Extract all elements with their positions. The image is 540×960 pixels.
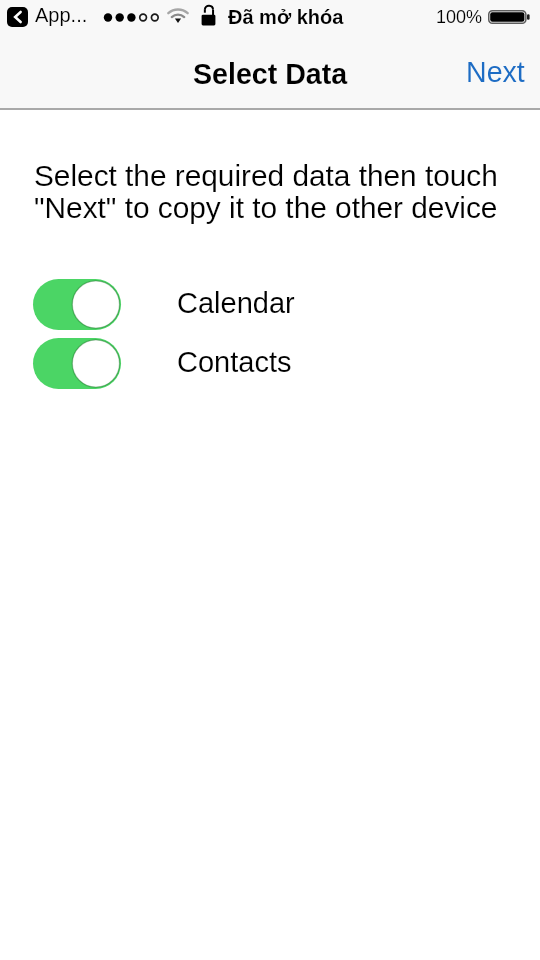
staticText: Next bbox=[466, 56, 525, 88]
staticText: Calendar bbox=[177, 287, 295, 319]
staticText: Select the required data then touch "Nex… bbox=[34, 159, 498, 224]
staticText: Select Data bbox=[193, 58, 348, 90]
staticText: App... bbox=[35, 4, 88, 26]
staticText: 100% bbox=[436, 7, 483, 27]
other: Contacts on bbox=[33, 338, 121, 389]
button[interactable]: Back to App bbox=[7, 7, 28, 27]
staticText: Contacts bbox=[177, 346, 292, 378]
button[interactable]: Calendar on bbox=[0, 279, 540, 330]
staticText: Đã mở khóa bbox=[228, 6, 344, 28]
button[interactable]: Next bbox=[451, 44, 540, 100]
button[interactable]: Contacts on bbox=[0, 338, 540, 389]
other: Calendar on bbox=[33, 279, 121, 330]
